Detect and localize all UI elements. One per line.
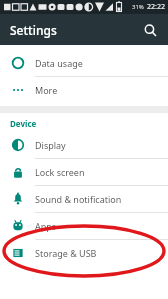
button[interactable]: Display bbox=[0, 132, 168, 158]
staticText: Sound & notification bbox=[35, 193, 122, 205]
staticText: 31% bbox=[132, 3, 144, 11]
staticText: Storage & USB bbox=[35, 247, 97, 259]
button[interactable]: Lock screen bbox=[0, 159, 168, 185]
staticText: Apps bbox=[35, 220, 57, 232]
button[interactable]: More bbox=[0, 77, 168, 103]
staticText: More bbox=[35, 84, 58, 96]
button[interactable]: Data usage bbox=[0, 50, 168, 76]
staticText: 22:22 bbox=[147, 2, 165, 12]
button[interactable]: Storage & USB bbox=[0, 240, 168, 266]
staticText: Lock screen bbox=[35, 166, 85, 178]
button[interactable]: Apps bbox=[0, 213, 168, 239]
button[interactable]: Search bbox=[138, 18, 162, 42]
staticText: Device bbox=[10, 118, 37, 129]
staticText: Display bbox=[35, 139, 66, 151]
staticText: Settings bbox=[10, 22, 57, 38]
button[interactable]: Sound & notification bbox=[0, 186, 168, 212]
staticText: Data usage bbox=[35, 57, 83, 69]
